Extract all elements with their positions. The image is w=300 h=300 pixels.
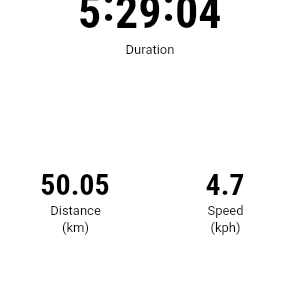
staticText: 5: [78, 0, 102, 39]
staticText: Distance: [50, 203, 101, 218]
staticText: 29: [115, 0, 162, 39]
staticText: (kph): [210, 220, 241, 235]
staticText: Duration: [0, 42, 300, 57]
button[interactable]: 4.7: [150, 167, 300, 233]
staticText: :: [102, 0, 115, 32]
staticText: 4.7: [205, 167, 245, 202]
button[interactable]: 50.05: [0, 167, 150, 233]
staticText: Speed: [207, 203, 244, 218]
staticText: :: [162, 0, 175, 32]
staticText: 04: [175, 0, 222, 39]
staticText: (km): [62, 220, 89, 235]
staticText: 50.05: [40, 167, 110, 202]
